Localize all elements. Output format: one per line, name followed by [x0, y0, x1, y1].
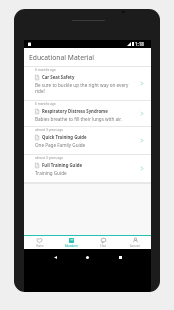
staticText: Account	[130, 244, 141, 248]
staticText: Full Training Guide	[42, 162, 82, 168]
staticText: Training Guide	[35, 170, 67, 176]
staticText: Babies breathe to fill their lungs with …	[35, 116, 122, 122]
staticText: Car Seat Safety	[42, 74, 75, 80]
staticText: Chat	[100, 244, 106, 248]
staticText: Quick Training Guide	[42, 134, 87, 140]
button[interactable]: Home	[24, 236, 55, 249]
button[interactable]: 6 months ago	[24, 101, 151, 127]
button[interactable]: Chat	[87, 236, 119, 249]
staticText: One Page Family Guide	[35, 142, 86, 148]
staticText: Respiratory Distress Syndrome	[42, 108, 108, 114]
staticText: almost 3 years ago	[35, 128, 64, 132]
staticText: almost 3 years ago	[35, 156, 64, 160]
staticText: Home	[36, 244, 44, 248]
button[interactable]: almost 3 years ago	[24, 155, 151, 183]
staticText: Be sure to buckle up the right way on ev…	[35, 82, 131, 94]
staticText: 1:18	[135, 41, 144, 47]
button[interactable]: almost 3 years ago	[24, 127, 151, 155]
button[interactable]: Account	[119, 236, 151, 249]
staticText: Educational Material	[29, 53, 95, 62]
button[interactable]: Education	[55, 236, 87, 249]
staticText: 6 months ago	[35, 102, 56, 106]
button[interactable]: Home	[86, 256, 89, 259]
staticText: Education	[65, 244, 78, 248]
button[interactable]: 6 months ago	[24, 67, 151, 101]
staticText: 6 months ago	[35, 68, 56, 72]
button[interactable]: Back	[54, 256, 57, 259]
